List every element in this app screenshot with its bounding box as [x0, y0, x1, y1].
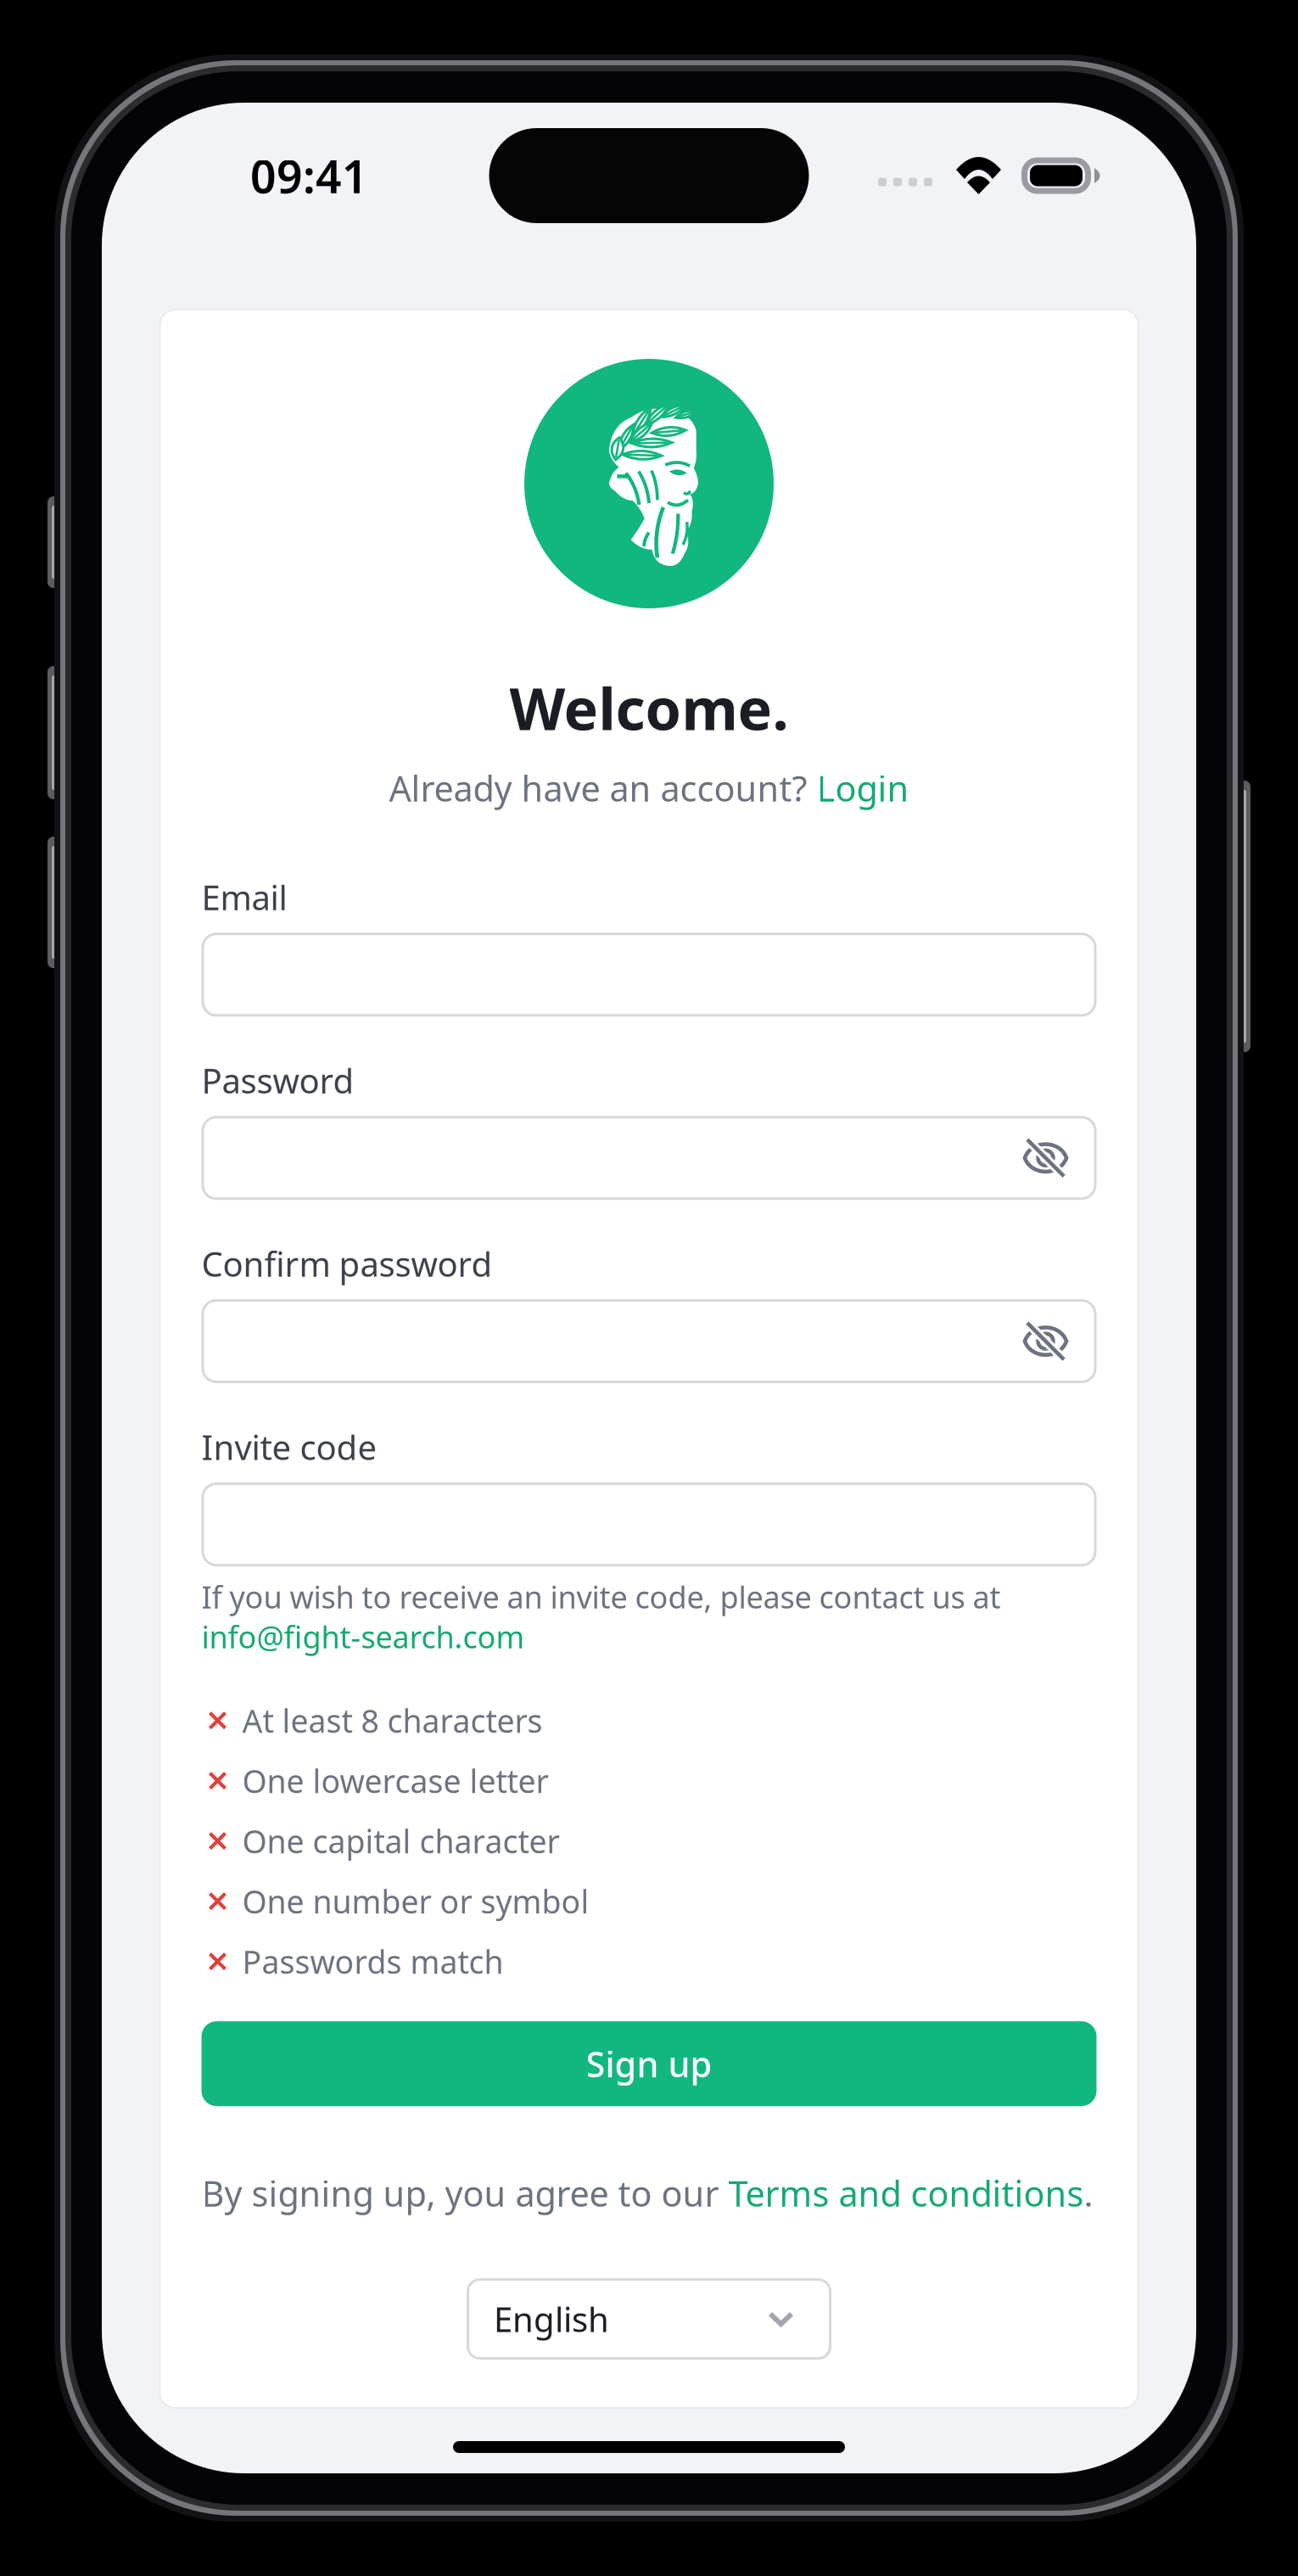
staticText: Confirm password: [201, 1241, 492, 1286]
staticText: If you wish to receive an invite code, p…: [201, 1576, 1001, 1617]
staticText: One lowercase letter: [242, 1760, 548, 1802]
staticText: Terms and conditions: [728, 2170, 1084, 2216]
button[interactable]: Show password: [1023, 1318, 1097, 1364]
staticText: Welcome.: [509, 669, 789, 746]
button[interactable]: Login: [817, 765, 909, 811]
staticText: One capital character: [242, 1820, 559, 1862]
staticText: Sign up: [586, 2040, 712, 2087]
button[interactable]: info@fight-search.com: [201, 1617, 525, 1656]
staticText: Password: [201, 1058, 354, 1103]
button[interactable]: Sign up: [201, 2021, 1097, 2106]
staticText: Passwords match: [242, 1940, 504, 1982]
staticText: One number or symbol: [242, 1880, 589, 1922]
staticText: Email: [201, 874, 287, 920]
staticText: English: [494, 2296, 609, 2341]
staticText: info@fight-search.com: [201, 1616, 525, 1657]
button[interactable]: Terms and conditions: [728, 2170, 1084, 2216]
button[interactable]: English: [467, 2278, 831, 2360]
staticText: 09:41: [250, 146, 368, 206]
staticText: By signing up, you agree to our: [201, 2170, 728, 2216]
staticText: Invite code: [201, 1424, 377, 1469]
staticText: Already have an account?: [389, 765, 817, 811]
staticText: .: [1084, 2170, 1093, 2216]
staticText: Login: [817, 765, 909, 811]
staticText: At least 8 characters: [242, 1699, 543, 1742]
button[interactable]: Show password: [1023, 1135, 1097, 1181]
